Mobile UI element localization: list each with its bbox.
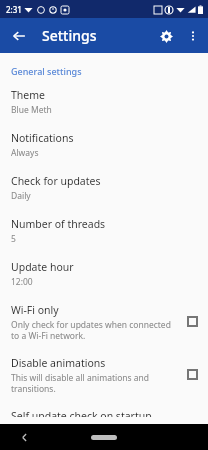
button[interactable]: Back [14,427,34,447]
button[interactable]: Update hour [0,252,208,295]
button[interactable]: Disable animations [0,348,208,401]
button[interactable]: Wi-Fi only [0,295,208,348]
staticText: This will disable all animations and tra… [11,372,178,394]
button[interactable]: Wi-Fi only [184,313,200,329]
staticText: General settings [11,65,82,77]
button[interactable]: Settings [152,22,180,50]
staticText: Disable animations [11,356,106,370]
staticText: Settings [42,26,97,45]
button[interactable]: Notifications [0,123,208,166]
staticText: 2:31 [6,4,22,15]
staticText: Always [11,147,39,159]
button[interactable]: Number of threads [0,209,208,252]
button[interactable]: Theme [0,80,208,123]
staticText: 5 [11,233,16,245]
staticText: Daily [11,190,31,202]
staticText: 12:00 [11,276,33,288]
staticText: Update hour [11,260,74,274]
staticText: Theme [11,88,45,102]
staticText: Check for updates [11,174,101,188]
button[interactable]: Disable animations [184,366,200,382]
staticText: Self update check on startup [11,409,152,417]
button[interactable]: Self update check on startup [0,401,208,424]
staticText: Only check for updates when connected to… [11,319,178,341]
button[interactable]: Back [6,23,32,49]
staticText: Wi-Fi only [11,303,59,317]
button[interactable]: Home [91,435,117,440]
staticText: Number of threads [11,217,106,231]
staticText: Notifications [11,131,74,145]
staticText: Blue Meth [11,104,52,116]
button[interactable]: Check for updates [0,166,208,209]
button[interactable]: More options [180,23,206,49]
